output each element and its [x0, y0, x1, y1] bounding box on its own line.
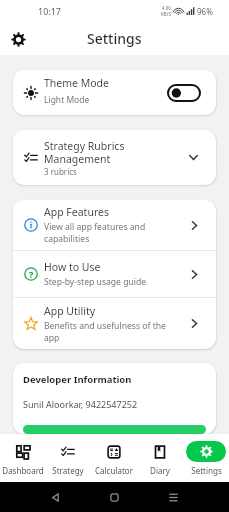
button[interactable] [23, 425, 206, 434]
staticText: View all app features and capabilities [44, 221, 146, 245]
other: Home [110, 493, 119, 502]
button[interactable]: ? [13, 251, 216, 297]
button[interactable]: Toggle theme mode [167, 84, 201, 102]
staticText: ? [29, 268, 34, 280]
button[interactable]: App Features [13, 200, 216, 250]
other: Back [51, 493, 60, 502]
staticText: How to Use [44, 260, 101, 274]
staticText: Strategy Rubrics Management [44, 139, 125, 166]
staticText: Strategy [52, 465, 84, 476]
staticText: Settings [191, 465, 222, 476]
staticText: Sunil Aloorkar, 9422547252 [23, 398, 138, 410]
staticText: Calculator [95, 465, 133, 476]
button[interactable]: Calculator [91, 434, 137, 482]
button[interactable]: Settings [8, 29, 28, 49]
staticText: 4.00 [162, 5, 171, 11]
staticText: 10:17 [38, 5, 62, 17]
staticText: Diary [150, 465, 170, 476]
staticText: Step-by-step usage guide [44, 276, 147, 288]
staticText: App Features [44, 205, 109, 219]
other: Open [187, 316, 202, 331]
button[interactable]: Theme Mode [13, 70, 216, 115]
staticText: KB/S [161, 11, 171, 17]
button[interactable]: App Utility [13, 298, 216, 349]
button[interactable]: Strategy [45, 434, 91, 482]
staticText: Benefits and usefulness of the app [44, 320, 166, 344]
staticText: App Utility [44, 304, 96, 318]
button[interactable]: Settings [183, 434, 229, 482]
staticText: 96% [197, 6, 213, 17]
other: Recent apps [169, 493, 178, 502]
staticText: Light Mode [44, 94, 90, 106]
other: Open [187, 218, 202, 233]
button[interactable]: Strategy Rubrics Management [13, 130, 216, 185]
staticText: Settings [87, 29, 142, 48]
staticText: 3 rubrics [44, 166, 77, 177]
button[interactable]: Diary [137, 434, 183, 482]
staticText: Dashboard [2, 465, 44, 476]
button[interactable]: Dashboard [0, 434, 45, 482]
other: Expand [186, 150, 201, 165]
staticText: Theme Mode [44, 76, 109, 90]
staticText: Developer Information [23, 373, 132, 386]
other: Open [187, 267, 202, 282]
